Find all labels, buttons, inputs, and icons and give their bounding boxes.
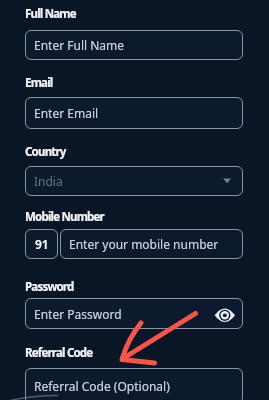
staticText: Enter Email (34, 105, 99, 121)
staticText: Password (25, 279, 74, 295)
staticText: Email (25, 75, 53, 91)
staticText: 91 (35, 236, 49, 252)
staticText: Referral Code (25, 345, 93, 361)
button[interactable]: Referral Code (Optional) (25, 368, 243, 400)
button[interactable]: Enter Email (25, 97, 243, 129)
staticText: Enter Full Name (34, 37, 125, 53)
button[interactable]: India (25, 166, 243, 196)
staticText: Enter your mobile number (69, 236, 219, 252)
staticText: Full Name (25, 6, 76, 22)
staticText: Mobile Number (25, 209, 104, 225)
staticText: India (34, 173, 63, 189)
button[interactable]: 91 (25, 229, 58, 259)
button[interactable]: Enter your mobile number (60, 229, 243, 259)
button[interactable]: Enter Password (25, 298, 243, 329)
staticText: Enter Password (34, 306, 122, 322)
staticText: Country (25, 144, 66, 160)
button[interactable]: Enter Full Name (25, 30, 243, 60)
staticText: Referral Code (Optional) (34, 378, 170, 394)
